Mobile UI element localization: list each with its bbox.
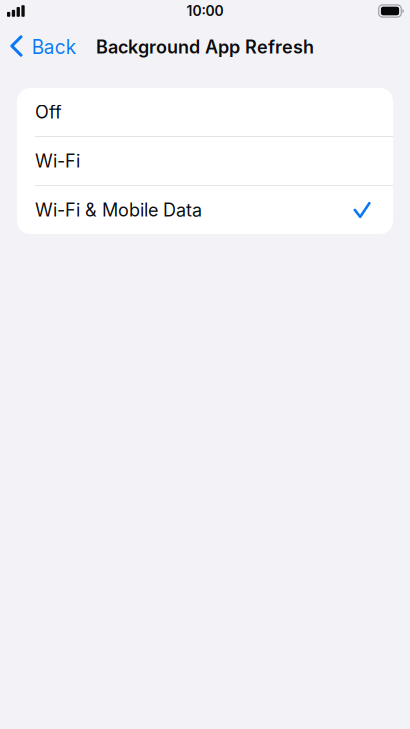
- staticText: Wi-Fi: [35, 150, 80, 172]
- button[interactable]: Off: [17, 88, 393, 136]
- button[interactable]: Wi-Fi: [17, 137, 393, 185]
- button[interactable]: Wi-Fi & Mobile Data: [17, 186, 393, 234]
- staticText: 10:00: [186, 3, 223, 19]
- staticText: Back: [32, 35, 76, 58]
- staticText: Background App Refresh: [96, 36, 314, 58]
- staticText: Off: [35, 101, 62, 123]
- button[interactable]: Back: [0, 30, 84, 64]
- staticText: Wi-Fi & Mobile Data: [35, 199, 202, 221]
